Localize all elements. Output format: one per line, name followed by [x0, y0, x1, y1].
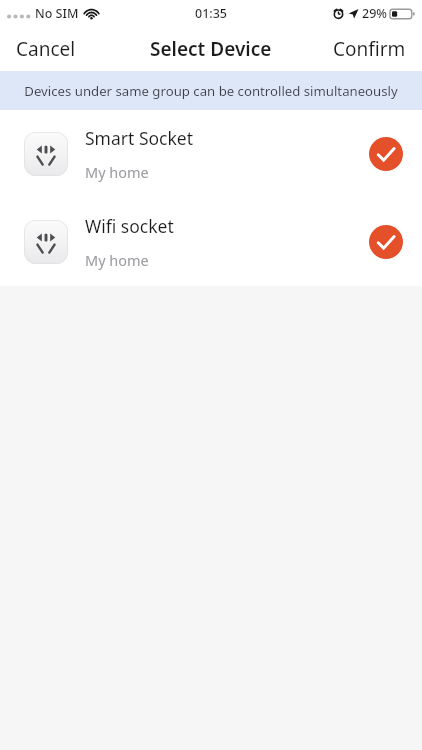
- button[interactable]: Confirm: [317, 30, 422, 68]
- button[interactable]: Wifi socket: [0, 198, 422, 286]
- staticText: 01:35: [195, 5, 228, 22]
- staticText: Wifi socket: [85, 214, 174, 238]
- staticText: No SIM: [35, 5, 79, 22]
- staticText: My home: [85, 162, 149, 182]
- staticText: Confirm: [333, 36, 406, 62]
- button[interactable]: Selected, Smart Socket: [364, 132, 408, 176]
- button[interactable]: Cancel: [0, 30, 92, 68]
- button[interactable]: Selected, Wifi socket: [364, 220, 408, 264]
- button[interactable]: Smart Socket: [0, 110, 422, 198]
- staticText: Cancel: [16, 36, 76, 62]
- staticText: Select Device: [150, 36, 272, 62]
- staticText: My home: [85, 250, 149, 270]
- staticText: Devices under same group can be controll…: [24, 82, 398, 100]
- staticText: 29%: [362, 5, 387, 22]
- staticText: Smart Socket: [85, 126, 194, 150]
